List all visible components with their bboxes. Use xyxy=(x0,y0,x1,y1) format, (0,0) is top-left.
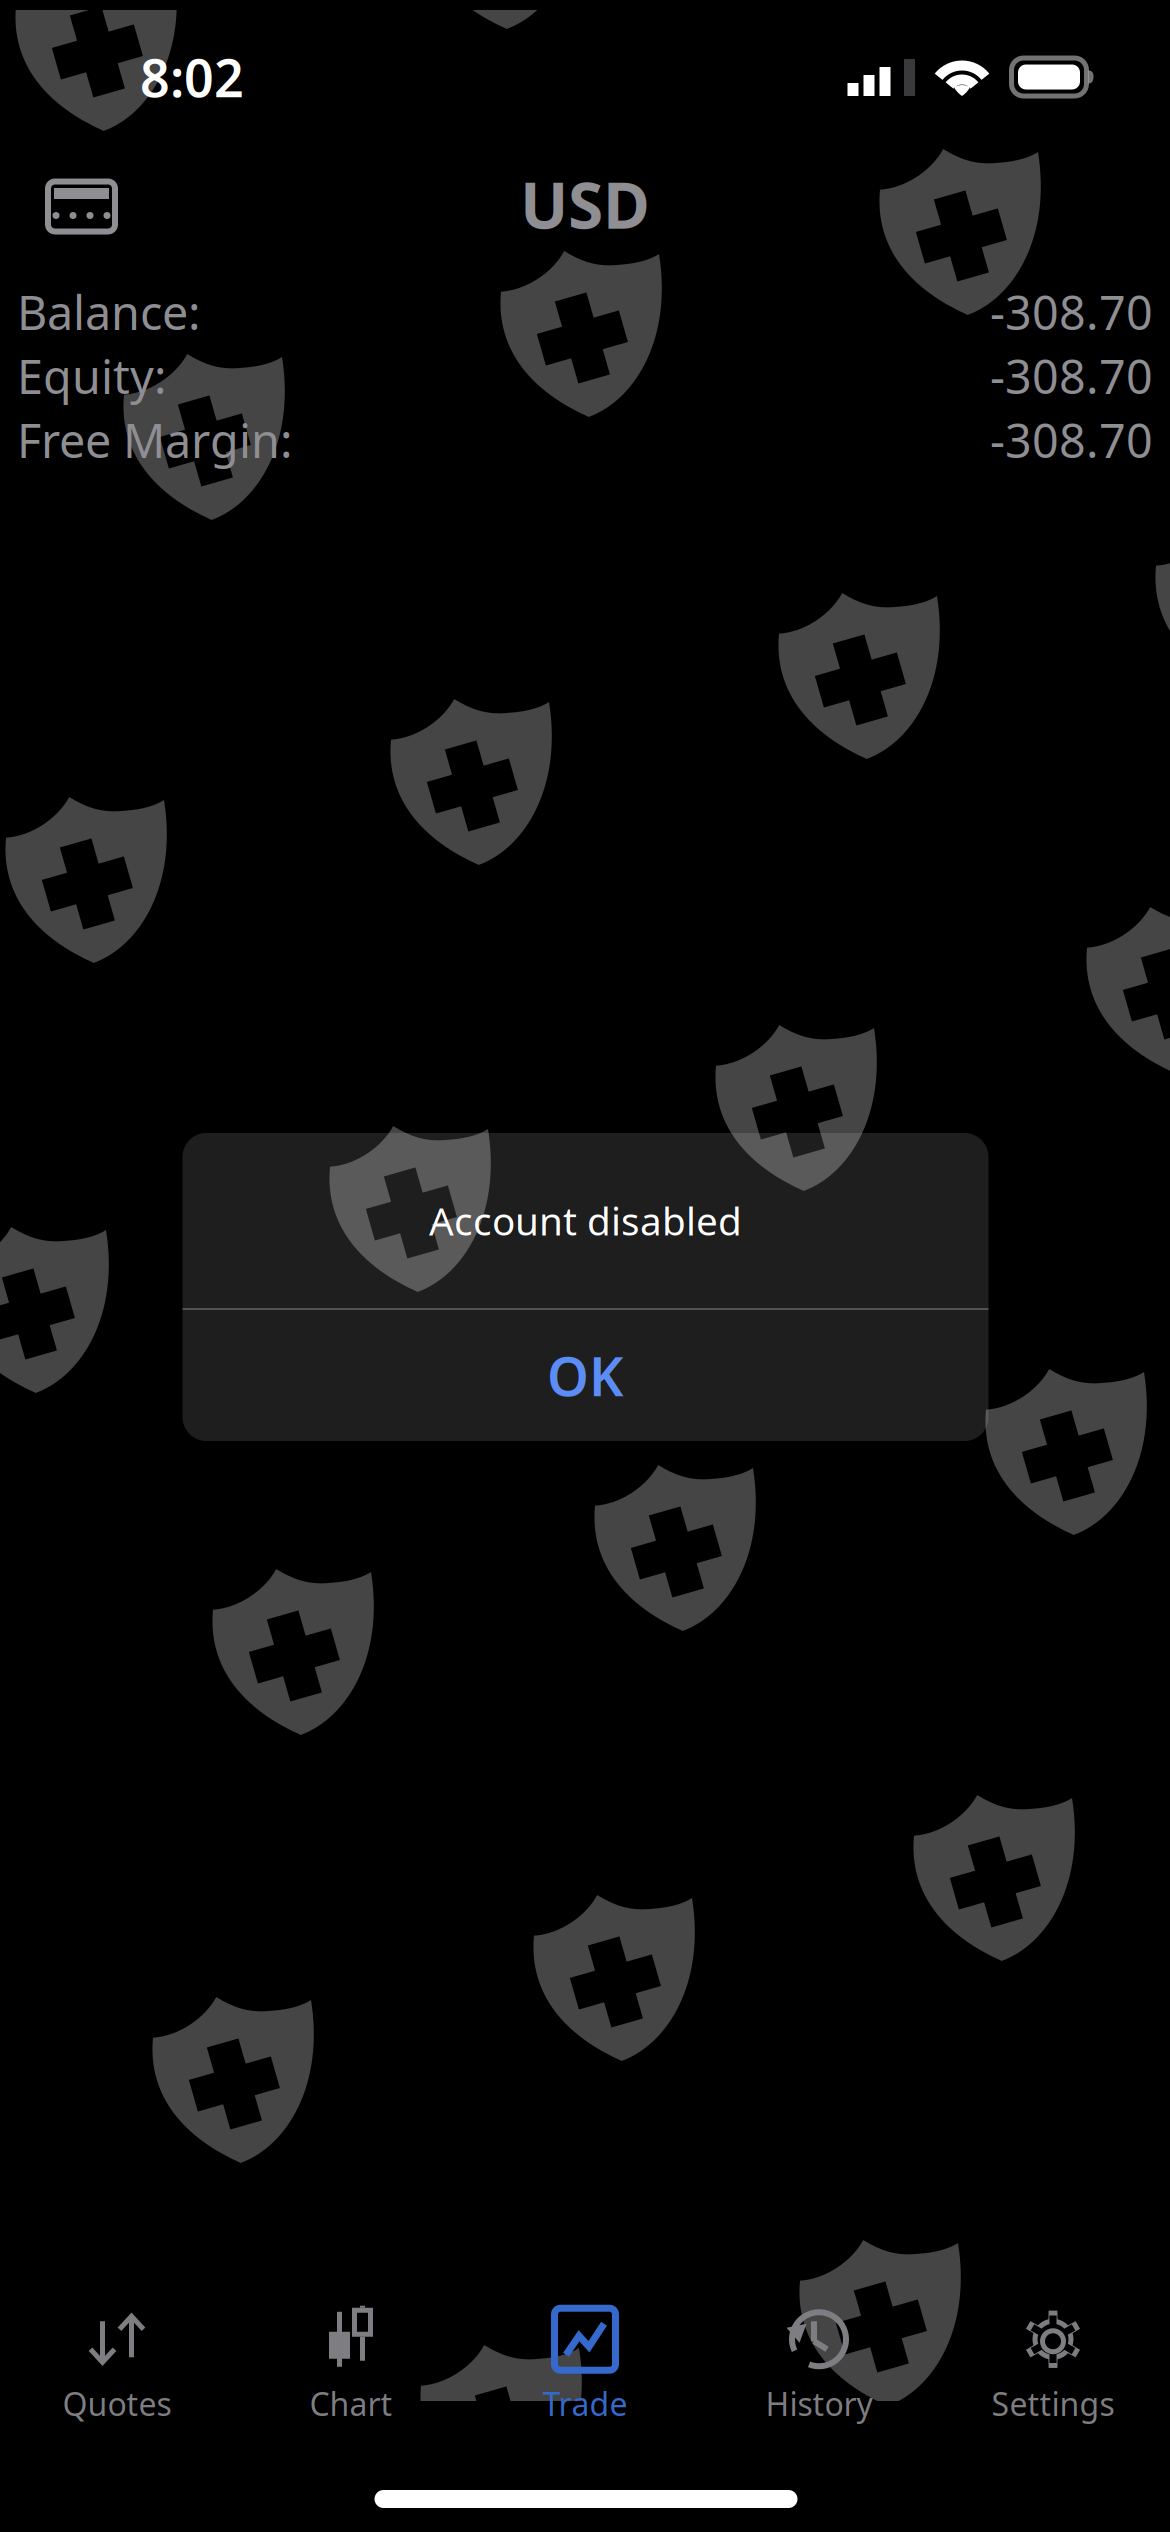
staticText: Equity: xyxy=(17,345,167,407)
staticText: History xyxy=(765,2382,872,2425)
button[interactable]: Quotes xyxy=(0,2291,234,2441)
staticText: USD xyxy=(520,161,650,246)
staticText: Settings xyxy=(991,2382,1114,2425)
staticText: Trade xyxy=(542,2382,627,2425)
staticText: -308.70 xyxy=(990,409,1153,471)
staticText: Account disabled xyxy=(429,1195,742,1246)
staticText: Free Margin: xyxy=(17,409,293,471)
staticText: Quotes xyxy=(62,2382,171,2425)
staticText: Balance: xyxy=(17,281,201,343)
button[interactable]: History xyxy=(702,2291,936,2441)
staticText: OK xyxy=(547,1340,624,1411)
staticText: -308.70 xyxy=(990,281,1153,343)
button[interactable]: Chart xyxy=(234,2291,468,2441)
staticText: Chart xyxy=(309,2382,392,2425)
button[interactable]: Accounts xyxy=(18,155,145,257)
staticText: 8:02 xyxy=(140,42,244,112)
button[interactable]: OK xyxy=(182,1310,988,1441)
button[interactable]: Trade xyxy=(468,2291,702,2441)
staticText: -308.70 xyxy=(990,345,1153,407)
button[interactable]: Settings xyxy=(936,2291,1170,2441)
